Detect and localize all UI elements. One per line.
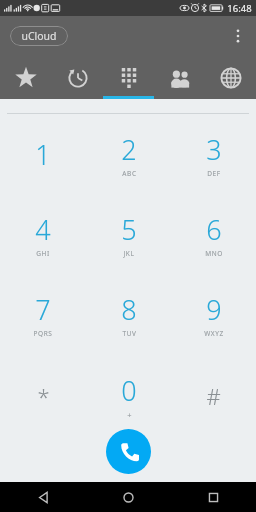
staticText: 7 [35, 291, 51, 328]
staticText: * [37, 381, 50, 411]
staticText: + [127, 410, 132, 420]
staticText: 1 [35, 136, 51, 173]
button[interactable]: 3 [171, 114, 256, 194]
staticText: TUV [122, 329, 137, 338]
button[interactable]: uCloud [10, 26, 68, 46]
staticText: 9 [206, 291, 222, 328]
staticText: 16:48 [227, 2, 252, 15]
staticText: 2 [121, 131, 137, 168]
staticText: MNO [205, 249, 223, 258]
button[interactable]: Home [86, 482, 171, 512]
staticText: WXYZ [204, 329, 224, 338]
staticText: DEF [207, 169, 221, 178]
staticText: PQRS [33, 329, 53, 338]
staticText: uCloud [21, 29, 57, 43]
button[interactable]: * [0, 355, 86, 436]
staticText: ABC [122, 169, 137, 178]
button[interactable]: Call history [52, 56, 103, 99]
staticText: 8 [121, 291, 137, 328]
button[interactable]: 8 [86, 274, 171, 355]
button[interactable]: Favorites [0, 56, 52, 99]
button[interactable]: 5 [86, 194, 171, 274]
staticText: # [206, 381, 221, 411]
button[interactable]: Contacts [154, 56, 205, 99]
button[interactable]: 7 [0, 274, 86, 355]
staticText: GHI [36, 249, 50, 258]
button[interactable]: Call [106, 429, 151, 474]
button[interactable]: 4 [0, 194, 86, 274]
staticText: 6 [206, 211, 222, 248]
staticText: 0 [121, 372, 137, 409]
button[interactable]: Web directory [205, 56, 256, 99]
staticText: 4 [35, 211, 51, 248]
staticText: 5 [121, 211, 137, 248]
button[interactable]: Back [0, 482, 86, 512]
button[interactable]: # [171, 355, 256, 436]
button[interactable]: 0 [86, 355, 171, 436]
staticText: 3 [206, 131, 222, 168]
button[interactable]: 1 [0, 114, 86, 194]
button[interactable]: Dialpad [103, 56, 154, 99]
staticText: JKL [123, 249, 135, 258]
button[interactable]: 9 [171, 274, 256, 355]
button[interactable]: 6 [171, 194, 256, 274]
button[interactable]: Recent apps [171, 482, 256, 512]
button[interactable]: 2 [86, 114, 171, 194]
button[interactable]: More options [220, 18, 256, 54]
